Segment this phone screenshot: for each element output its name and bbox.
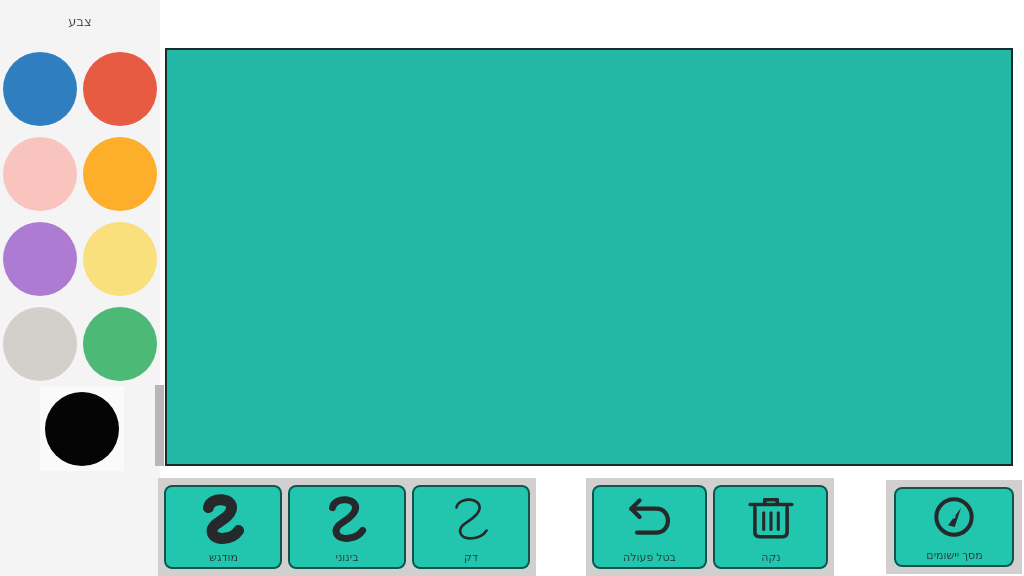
- button[interactable]: [0, 216, 80, 301]
- button[interactable]: [80, 46, 160, 131]
- staticText: מודגש: [209, 551, 238, 564]
- button[interactable]: [80, 216, 160, 301]
- button[interactable]: דק: [412, 485, 530, 569]
- button[interactable]: [80, 131, 160, 216]
- button[interactable]: [0, 131, 80, 216]
- staticText: דק: [464, 551, 478, 564]
- button[interactable]: [40, 386, 124, 471]
- staticText: מסך יישומים: [926, 547, 983, 562]
- button[interactable]: מסך יישומים: [894, 487, 1014, 567]
- staticText: צבע: [68, 14, 92, 29]
- button[interactable]: [0, 46, 80, 131]
- button[interactable]: בטל פעולה: [592, 485, 707, 569]
- button[interactable]: נקה: [713, 485, 828, 569]
- staticText: בינוני: [335, 551, 359, 564]
- button[interactable]: בינוני: [288, 485, 406, 569]
- button[interactable]: [0, 301, 80, 386]
- staticText: נקה: [761, 551, 781, 564]
- button[interactable]: מודגש: [164, 485, 282, 569]
- button[interactable]: [80, 301, 160, 386]
- staticText: בטל פעולה: [623, 549, 676, 564]
